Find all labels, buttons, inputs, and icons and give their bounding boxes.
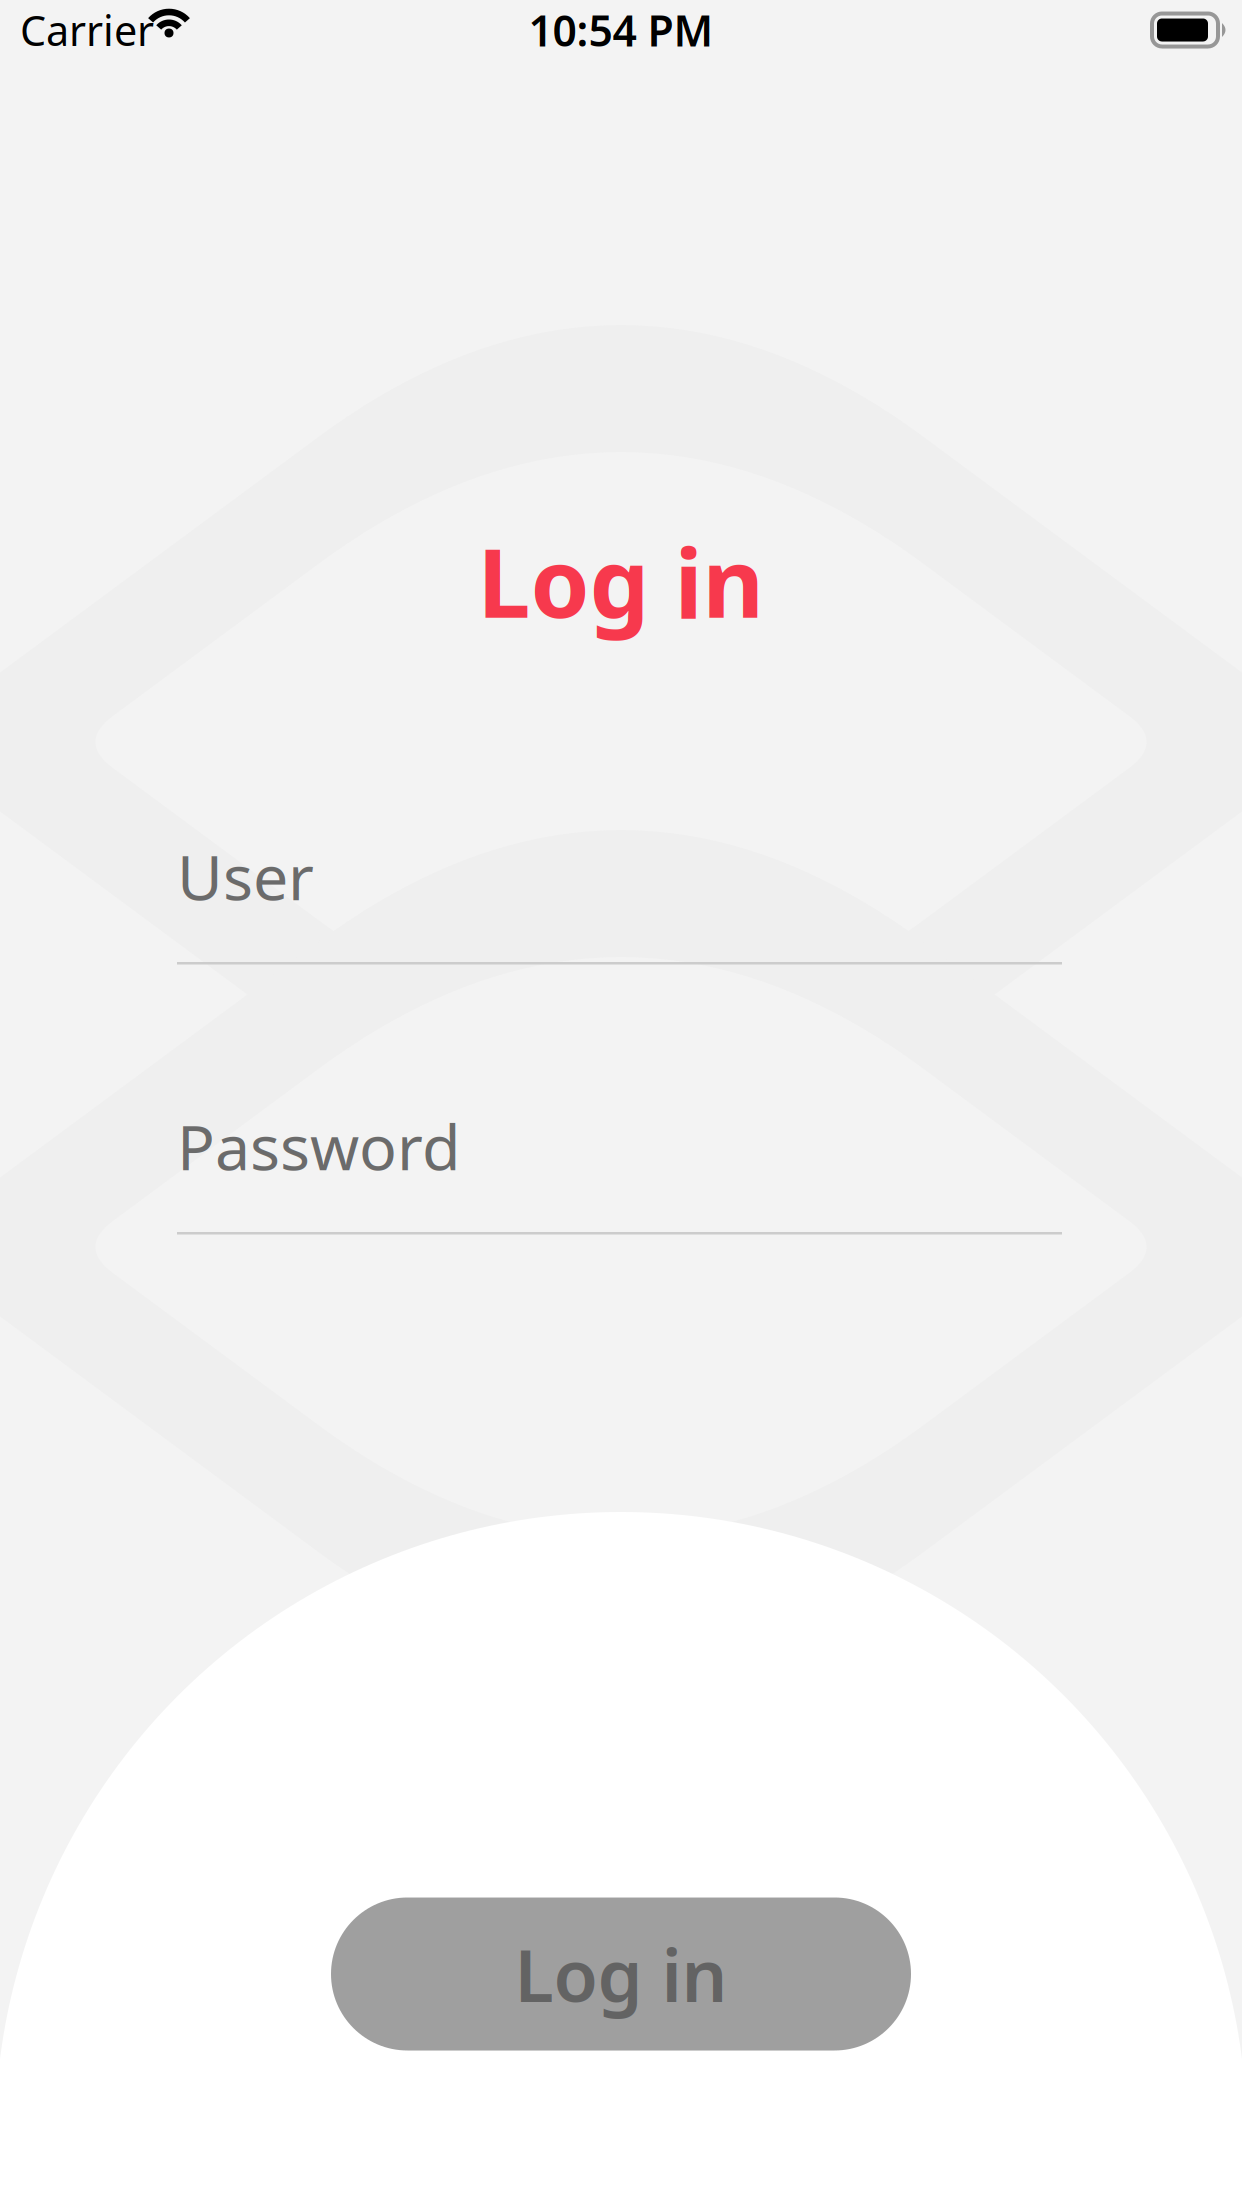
button[interactable]: Password	[0, 0, 1242, 2208]
staticText: Password	[177, 1104, 461, 1188]
staticText: Log in	[514, 1926, 727, 2022]
staticText: 10:54 PM	[528, 2, 713, 58]
staticText: Carrier	[20, 3, 154, 57]
button[interactable]: Log in	[331, 1897, 911, 2050]
staticText: Log in	[477, 518, 764, 644]
staticText: User	[177, 834, 314, 918]
button[interactable]: User	[0, 0, 1242, 2208]
